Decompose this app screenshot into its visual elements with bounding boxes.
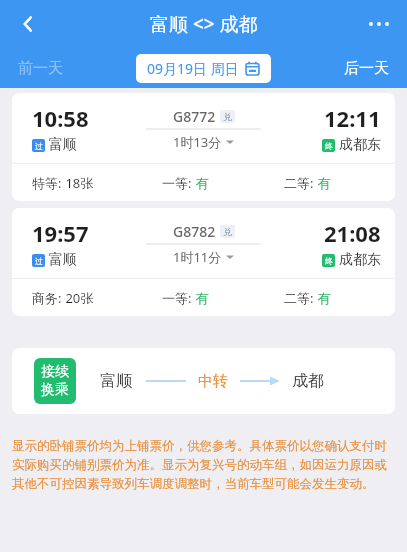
staticText: 有 bbox=[192, 289, 209, 307]
staticText: 有 bbox=[314, 289, 331, 307]
staticText: 终 bbox=[325, 256, 333, 266]
staticText: 兑 bbox=[223, 226, 232, 237]
button[interactable]: 10:58 bbox=[12, 93, 395, 201]
staticText: 1时11分 bbox=[173, 248, 222, 266]
staticText: 兑 bbox=[223, 111, 232, 122]
staticText: 商务: bbox=[32, 289, 62, 307]
staticText: 成都东 bbox=[339, 136, 381, 154]
staticText: 二等: bbox=[284, 174, 314, 192]
button[interactable]: 后一天 bbox=[340, 55, 393, 82]
staticText: 接续 bbox=[41, 363, 69, 381]
staticText: 10:58 bbox=[32, 103, 89, 133]
staticText: 有 bbox=[192, 174, 209, 192]
staticText: 富顺 bbox=[100, 371, 132, 391]
staticText: 12:11 bbox=[324, 103, 381, 133]
button[interactable]: More options bbox=[357, 2, 401, 46]
staticText: 一等: bbox=[162, 289, 192, 307]
staticText: 二等: bbox=[284, 289, 314, 307]
staticText: 09月19日 周日 bbox=[147, 59, 239, 78]
staticText: 成都 bbox=[292, 371, 324, 391]
staticText: 1时13分 bbox=[173, 133, 222, 151]
staticText: 一等: bbox=[162, 174, 192, 192]
staticText: 过 bbox=[35, 256, 43, 266]
staticText: 富顺 bbox=[49, 251, 77, 269]
button[interactable]: Back bbox=[6, 2, 50, 46]
staticText: 富顺 <> 成都 bbox=[150, 11, 258, 37]
staticText: 特等: bbox=[32, 174, 62, 192]
staticText: 终 bbox=[325, 141, 333, 151]
button[interactable]: 前一天 bbox=[14, 55, 67, 82]
staticText: 成都东 bbox=[339, 251, 381, 269]
staticText: 21:08 bbox=[324, 218, 381, 248]
button[interactable]: 接续 bbox=[12, 348, 395, 414]
staticText: 过 bbox=[35, 141, 43, 151]
staticText: 有 bbox=[314, 174, 331, 192]
staticText: G8782 bbox=[173, 222, 216, 241]
button[interactable]: 19:57 bbox=[12, 208, 395, 316]
staticText: 换乘 bbox=[41, 381, 69, 399]
staticText: 中转 bbox=[198, 372, 228, 391]
staticText: 18张 bbox=[62, 174, 94, 192]
staticText: 富顺 bbox=[49, 136, 77, 154]
staticText: 20张 bbox=[62, 289, 94, 307]
button[interactable]: 09月19日 周日 bbox=[136, 54, 271, 83]
staticText: 显示的卧铺票价均为上铺票价，供您参考。具体票价以您确认支付时实际购买的铺别票价为… bbox=[12, 438, 395, 492]
staticText: 19:57 bbox=[32, 218, 89, 248]
staticText: G8772 bbox=[173, 107, 216, 126]
